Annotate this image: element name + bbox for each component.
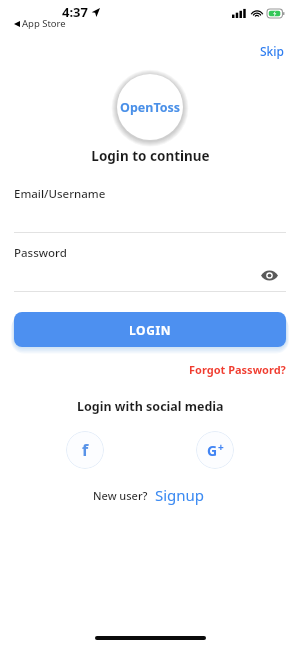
button[interactable]: Login with Google <box>196 431 234 469</box>
button[interactable]: Forgot Password? <box>187 360 288 379</box>
staticText: New user? <box>93 488 148 503</box>
staticText: 4:37 <box>62 3 88 21</box>
staticText: App Store <box>22 17 66 30</box>
staticText: Skip <box>260 43 284 59</box>
staticText: G <box>207 441 218 460</box>
button[interactable]: LOGIN <box>14 312 286 347</box>
button[interactable]: Show password <box>257 263 281 287</box>
staticText: OpenToss <box>120 99 181 116</box>
staticText: LOGIN <box>129 322 172 338</box>
button[interactable]: Email/Username <box>0 186 300 233</box>
staticText: Forgot Password? <box>189 362 286 377</box>
staticText: f <box>82 439 89 461</box>
staticText: Password <box>14 245 67 261</box>
staticText: Login with social media <box>77 398 224 415</box>
staticText: Email/Username <box>14 186 106 202</box>
button[interactable]: Password <box>0 245 300 292</box>
staticText: + <box>218 440 224 454</box>
staticText: Login to continue <box>91 147 210 165</box>
button[interactable]: Signup <box>153 485 207 505</box>
button[interactable]: Login with Facebook <box>66 431 104 469</box>
staticText: Signup <box>155 485 205 505</box>
button[interactable]: Skip <box>256 41 288 61</box>
